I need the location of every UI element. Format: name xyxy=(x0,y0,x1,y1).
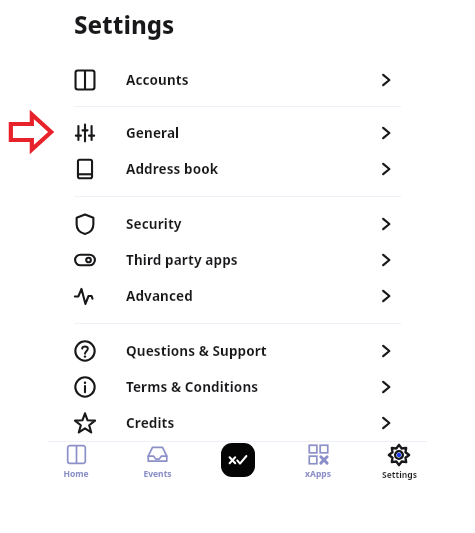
button[interactable]: Accounts xyxy=(74,62,401,98)
staticText: Events xyxy=(143,468,172,480)
button[interactable]: Address book xyxy=(74,151,401,187)
staticText: xApps xyxy=(305,468,331,480)
button[interactable]: xChecks xyxy=(202,443,274,477)
staticText: Terms & Conditions xyxy=(126,378,379,396)
staticText: Security xyxy=(126,215,379,233)
button[interactable]: Advanced xyxy=(74,278,401,314)
staticText: Address book xyxy=(126,160,379,178)
staticText: Advanced xyxy=(126,287,379,305)
button[interactable]: Security xyxy=(74,206,401,242)
staticText: Questions & Support xyxy=(126,342,379,360)
staticText: Accounts xyxy=(126,71,379,89)
staticText: Settings xyxy=(74,8,175,41)
button[interactable]: Terms & Conditions xyxy=(74,369,401,405)
button[interactable]: Home xyxy=(40,442,112,480)
button[interactable]: Settings xyxy=(363,442,435,481)
staticText: Third party apps xyxy=(126,251,379,269)
button[interactable]: xApps xyxy=(282,442,354,480)
staticText: Home xyxy=(63,468,89,480)
button[interactable]: General xyxy=(74,115,401,151)
staticText: Settings xyxy=(382,469,417,481)
staticText: Credits xyxy=(126,414,379,432)
button[interactable]: Credits xyxy=(74,405,401,441)
button[interactable]: Questions & Support xyxy=(74,333,401,369)
button[interactable]: Third party apps xyxy=(74,242,401,278)
button[interactable]: Events xyxy=(121,442,193,480)
staticText: General xyxy=(126,124,379,142)
